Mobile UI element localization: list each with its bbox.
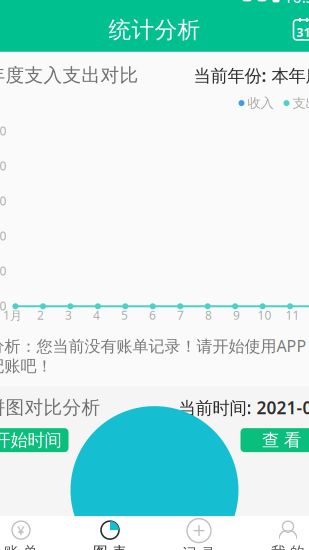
staticText: 11 bbox=[285, 307, 299, 323]
button[interactable]: 记 录 bbox=[154, 516, 243, 550]
staticText: 80 bbox=[0, 158, 6, 174]
staticText: 1月 bbox=[3, 307, 22, 323]
staticText: 支出 bbox=[292, 95, 309, 111]
staticText: 账 单 bbox=[4, 543, 38, 550]
staticText: 收入 bbox=[247, 95, 273, 111]
button[interactable]: 查 看 bbox=[240, 428, 309, 452]
staticText: 查 看 bbox=[262, 429, 301, 451]
staticText: 0 bbox=[0, 298, 6, 314]
staticText: 40 bbox=[0, 228, 6, 244]
staticText: 31 bbox=[296, 24, 309, 40]
staticText: 7 bbox=[177, 307, 184, 323]
button[interactable]: 选择日期 bbox=[282, 11, 309, 49]
staticText: 5 bbox=[121, 307, 128, 323]
staticText: 6 bbox=[149, 307, 156, 323]
staticText: 饼图对比分析 bbox=[0, 396, 100, 419]
staticText: ¥ bbox=[17, 521, 25, 539]
staticText: 当前年份: 本年度 bbox=[193, 64, 309, 87]
button[interactable]: 我 的 bbox=[243, 516, 309, 550]
staticText: 统计分析 bbox=[108, 16, 200, 44]
staticText: 图 表 bbox=[93, 543, 127, 550]
button[interactable]: 图 表 bbox=[65, 516, 154, 550]
staticText: 3 bbox=[65, 307, 72, 323]
staticText: 8 bbox=[205, 307, 212, 323]
staticText: 4 bbox=[93, 307, 100, 323]
button[interactable]: 开始时间 bbox=[0, 428, 68, 452]
staticText: 我 的 bbox=[271, 543, 305, 550]
staticText: 记 录 bbox=[182, 545, 216, 550]
staticText: 当前时间: 2021-08 bbox=[178, 396, 309, 419]
staticText: 开始时间 bbox=[0, 429, 61, 451]
staticText: 100 bbox=[0, 123, 6, 139]
staticText: 20 bbox=[0, 263, 6, 279]
staticText: 10 bbox=[257, 307, 271, 323]
staticText: 10:30 bbox=[283, 0, 309, 7]
button[interactable]: ¥ bbox=[0, 516, 65, 550]
staticText: 9 bbox=[233, 307, 240, 323]
staticText: 2 bbox=[37, 307, 44, 323]
staticText: 分析：您当前没有账单记录！请开始使用APP记账吧！ bbox=[0, 335, 306, 376]
staticText: 60 bbox=[0, 193, 6, 209]
staticText: 年度支入支出对比 bbox=[0, 64, 138, 87]
